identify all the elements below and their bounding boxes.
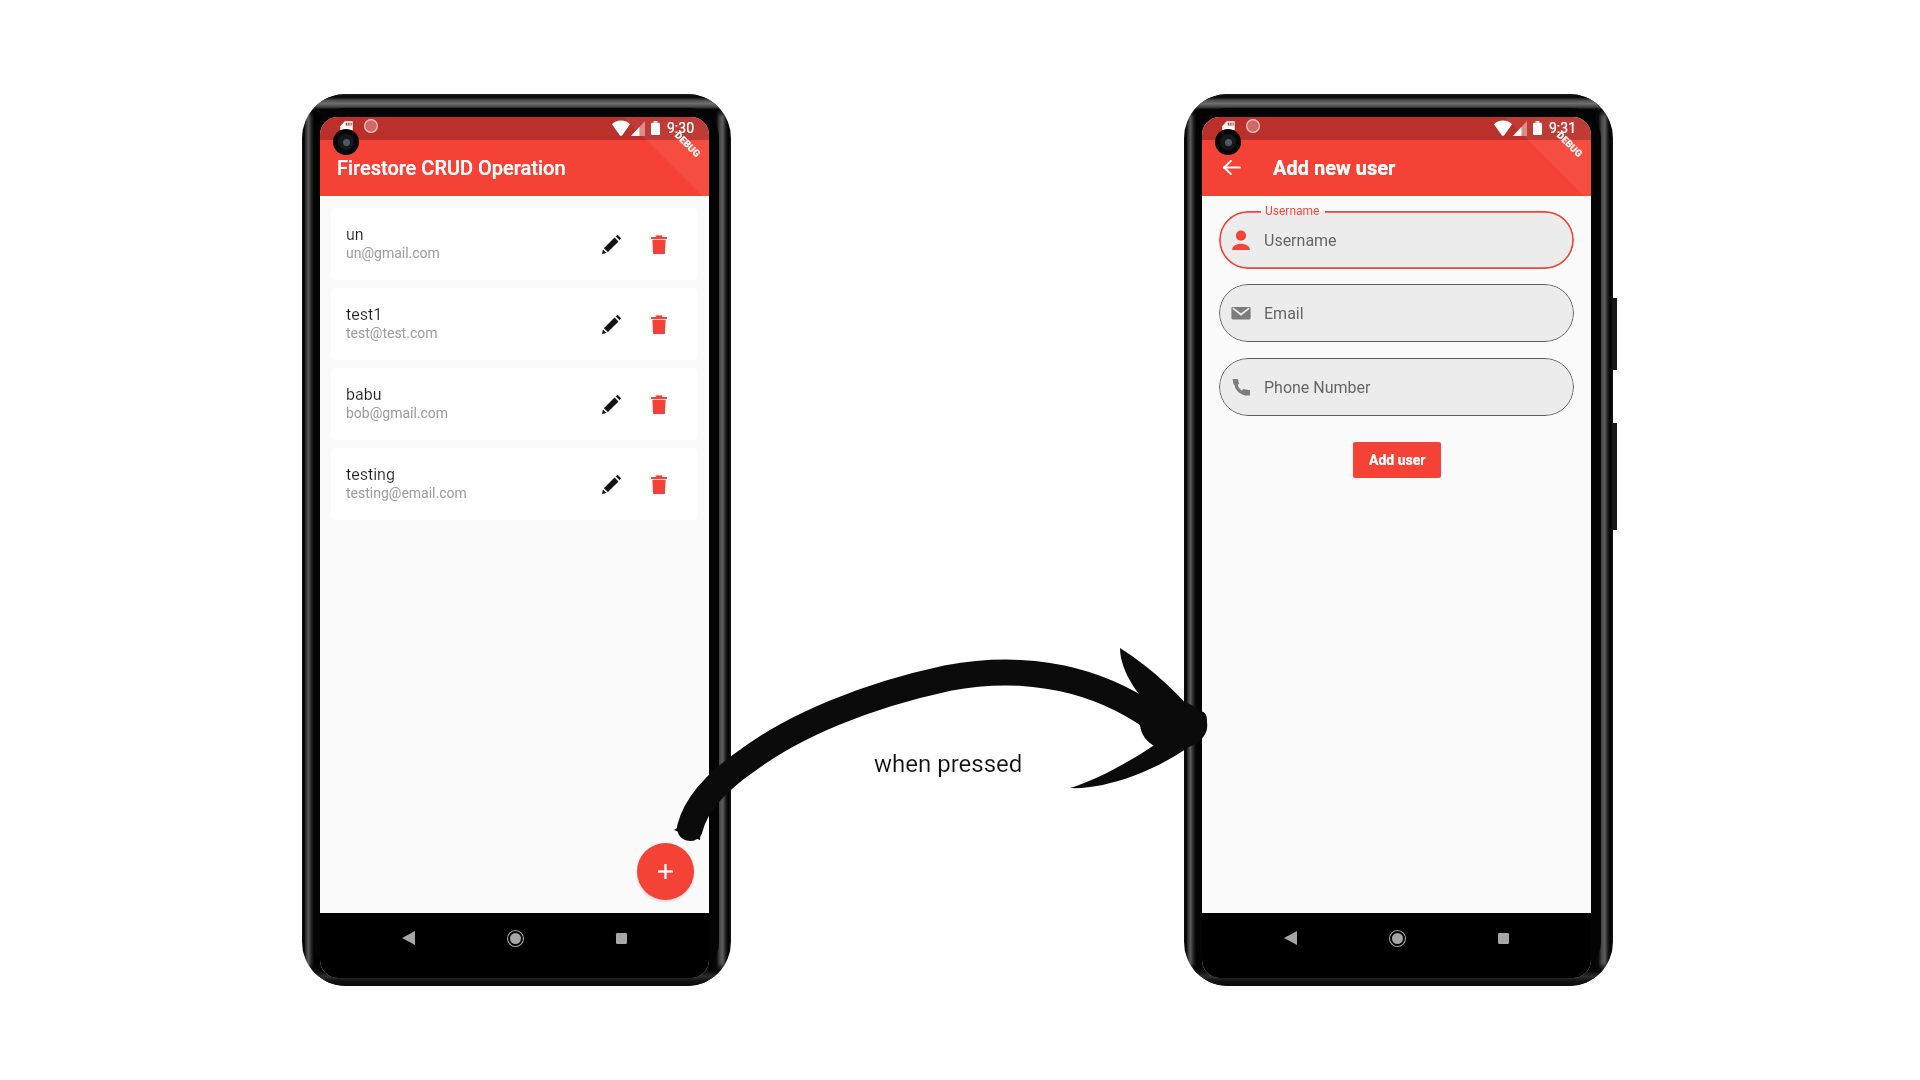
button[interactable]: Add user bbox=[1353, 442, 1441, 478]
staticText: un@gmail.com bbox=[346, 245, 440, 261]
staticText: 9:31 bbox=[1549, 120, 1576, 136]
button[interactable]: un bbox=[331, 208, 698, 280]
button[interactable]: test1 bbox=[331, 288, 698, 360]
staticText: Add new user bbox=[1273, 156, 1396, 179]
button[interactable]: Phone Number bbox=[1219, 358, 1574, 416]
staticText: test@test.com bbox=[346, 325, 438, 341]
button[interactable]: Delete bbox=[640, 305, 678, 343]
staticText: Add user bbox=[1369, 452, 1426, 468]
staticText: Username bbox=[1265, 204, 1320, 218]
button[interactable]: Delete bbox=[640, 385, 678, 423]
button[interactable]: Back bbox=[1270, 918, 1310, 958]
button[interactable]: Add user bbox=[637, 843, 694, 900]
staticText: when pressed bbox=[874, 750, 1023, 778]
button[interactable]: Edit bbox=[592, 305, 630, 343]
staticText: un bbox=[346, 225, 364, 244]
staticText: Email bbox=[1264, 304, 1304, 323]
button[interactable]: Back bbox=[388, 918, 428, 958]
button[interactable]: Edit bbox=[592, 385, 630, 423]
button[interactable]: Home bbox=[495, 918, 535, 958]
staticText: DEBUG bbox=[673, 129, 703, 160]
staticText: testing@email.com bbox=[346, 485, 467, 501]
button[interactable]: Recents bbox=[1483, 918, 1523, 958]
button[interactable]: Back bbox=[1213, 149, 1249, 185]
button[interactable]: Email bbox=[1219, 284, 1574, 342]
staticText: Username bbox=[1264, 231, 1337, 250]
button[interactable]: Delete bbox=[640, 465, 678, 503]
staticText: test1 bbox=[346, 305, 383, 324]
staticText: Firestore CRUD Operation bbox=[337, 156, 566, 179]
staticText: 9:30 bbox=[667, 120, 694, 136]
staticText: Phone Number bbox=[1264, 378, 1371, 397]
button[interactable]: Delete bbox=[640, 225, 678, 263]
button[interactable]: babu bbox=[331, 368, 698, 440]
button[interactable]: Edit bbox=[592, 465, 630, 503]
staticText: babu bbox=[346, 385, 382, 404]
button[interactable]: Home bbox=[1377, 918, 1417, 958]
staticText: testing bbox=[346, 465, 395, 484]
button[interactable]: testing bbox=[331, 448, 698, 520]
button[interactable]: Recents bbox=[601, 918, 641, 958]
button[interactable]: Username bbox=[1219, 211, 1574, 269]
button[interactable]: Edit bbox=[592, 225, 630, 263]
staticText: bob@gmail.com bbox=[346, 405, 449, 421]
staticText: DEBUG bbox=[1555, 129, 1585, 160]
